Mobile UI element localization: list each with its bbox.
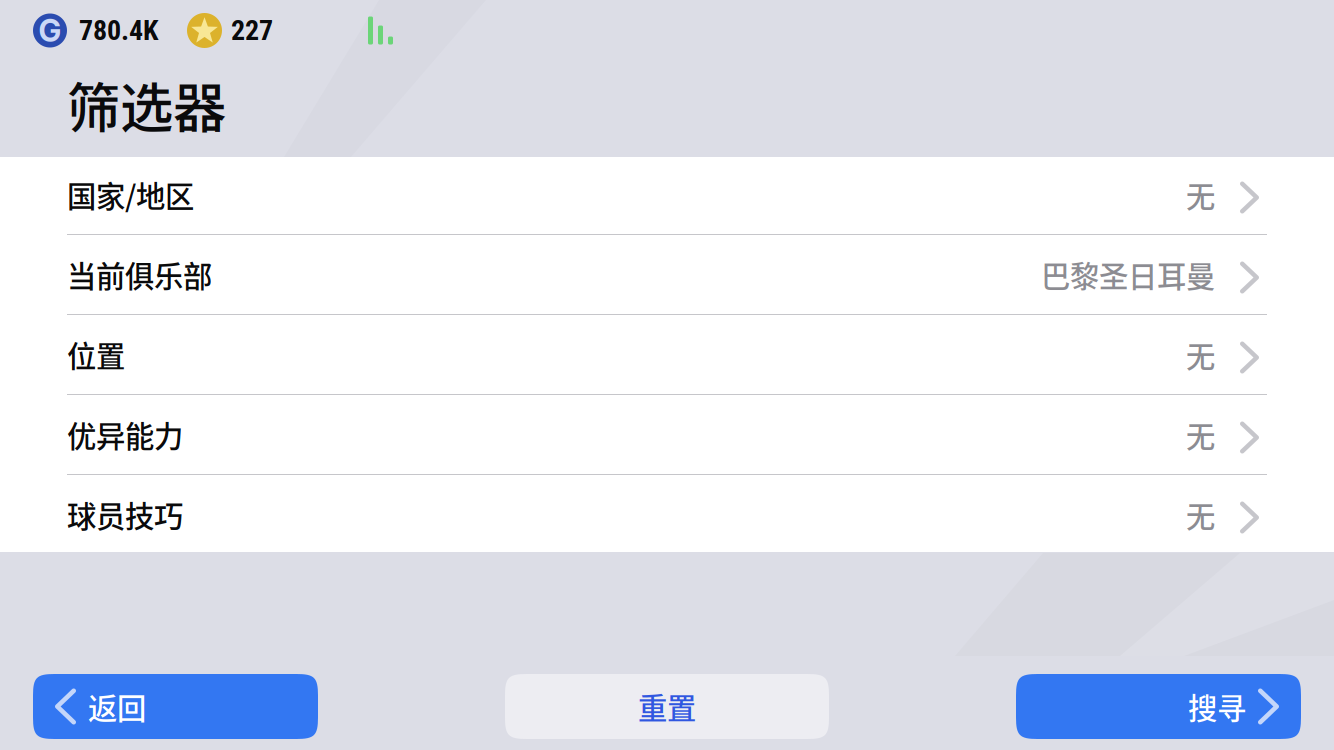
button[interactable]: 返回 — [33, 674, 318, 739]
staticText: 筛选器 — [67, 66, 226, 143]
staticText: 780.4K — [79, 14, 158, 47]
staticText: 搜寻 — [1188, 685, 1246, 728]
staticText: 球员技巧 — [67, 493, 183, 536]
staticText: 无 — [1186, 413, 1215, 456]
staticText: 当前俱乐部 — [67, 253, 212, 296]
staticText: 国家/地区 — [67, 173, 194, 216]
staticText: 无 — [1186, 173, 1215, 216]
staticText: 返回 — [88, 685, 146, 728]
staticText: 优异能力 — [67, 413, 183, 456]
staticText: 位置 — [67, 333, 125, 376]
button[interactable]: 优异能力 — [0, 395, 1334, 474]
staticText: 重置 — [638, 685, 696, 728]
button[interactable]: 国家/地区 — [0, 155, 1334, 234]
button[interactable]: 重置 — [505, 674, 829, 739]
button[interactable]: 球员技巧 — [0, 475, 1334, 554]
button[interactable]: 位置 — [0, 315, 1334, 394]
button[interactable]: 搜寻 — [1016, 674, 1301, 739]
staticText: G — [38, 12, 61, 49]
staticText: 巴黎圣日耳曼 — [1041, 253, 1215, 296]
staticText: 无 — [1186, 333, 1215, 376]
staticText: 227 — [231, 14, 273, 47]
button[interactable]: 当前俱乐部 — [0, 235, 1334, 314]
staticText: 无 — [1186, 493, 1215, 536]
